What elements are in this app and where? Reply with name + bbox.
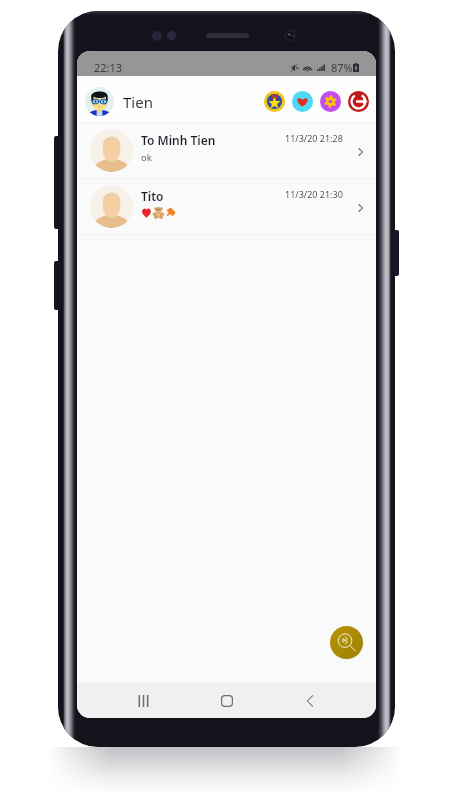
button[interactable]: Favourites bbox=[292, 91, 313, 112]
button[interactable]: Badges bbox=[264, 91, 285, 112]
button[interactable]: Tito bbox=[77, 179, 376, 235]
staticText: 22:13 bbox=[94, 60, 123, 75]
staticText: ok bbox=[141, 151, 152, 164]
staticText: 87% bbox=[331, 60, 353, 75]
button[interactable]: Back bbox=[294, 683, 326, 718]
staticText: Tito bbox=[141, 188, 164, 204]
staticText: To Minh Tien bbox=[141, 132, 216, 148]
button[interactable]: Home bbox=[211, 683, 243, 718]
button[interactable]: Search bbox=[330, 626, 363, 659]
button[interactable]: Recent apps bbox=[127, 683, 159, 718]
staticText: 11/3/20 21:30 bbox=[285, 188, 343, 200]
button[interactable]: Log out bbox=[348, 91, 369, 112]
button[interactable]: Settings bbox=[320, 91, 341, 112]
staticText: Tien bbox=[123, 92, 153, 112]
button[interactable]: To Minh Tien bbox=[77, 123, 376, 179]
staticText: 11/3/20 21:28 bbox=[285, 132, 343, 144]
